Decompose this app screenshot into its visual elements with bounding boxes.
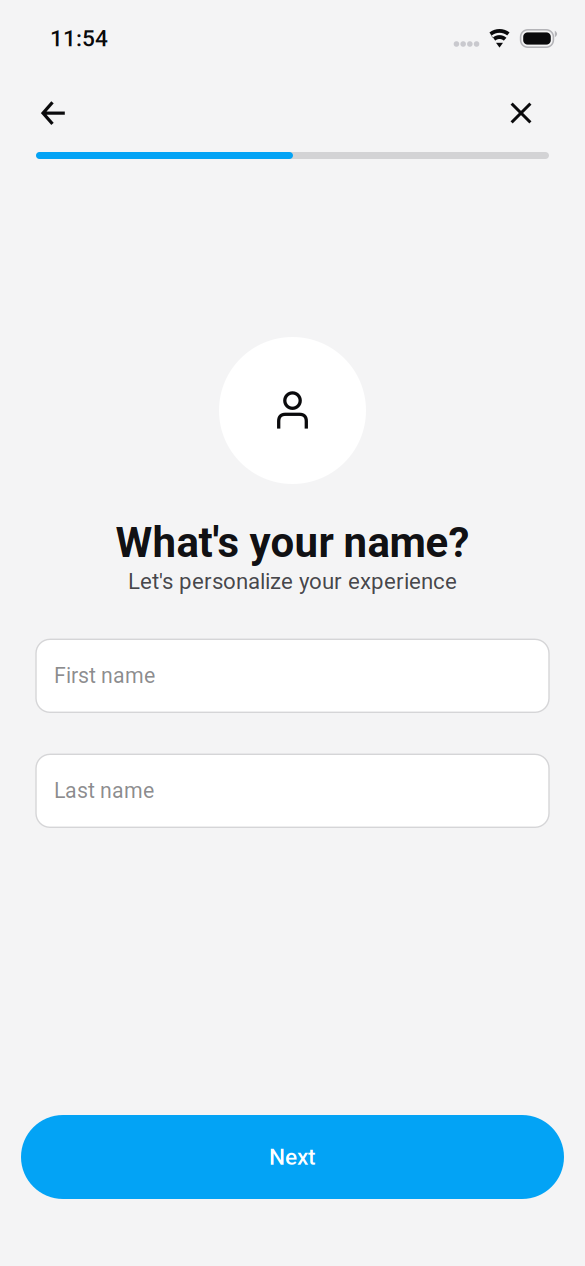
staticText: Last name	[54, 778, 154, 803]
button[interactable]: Back	[26, 87, 82, 139]
button[interactable]: Close	[493, 87, 549, 139]
button[interactable]: Last name	[36, 754, 549, 827]
button[interactable]: Next	[21, 1115, 564, 1199]
staticText: What's your name?	[115, 518, 469, 567]
staticText: Let's personalize your experience	[128, 568, 457, 594]
staticText: First name	[54, 663, 155, 688]
staticText: Next	[269, 1144, 316, 1170]
button[interactable]: First name	[36, 639, 549, 712]
staticText: 11:54	[50, 25, 108, 52]
